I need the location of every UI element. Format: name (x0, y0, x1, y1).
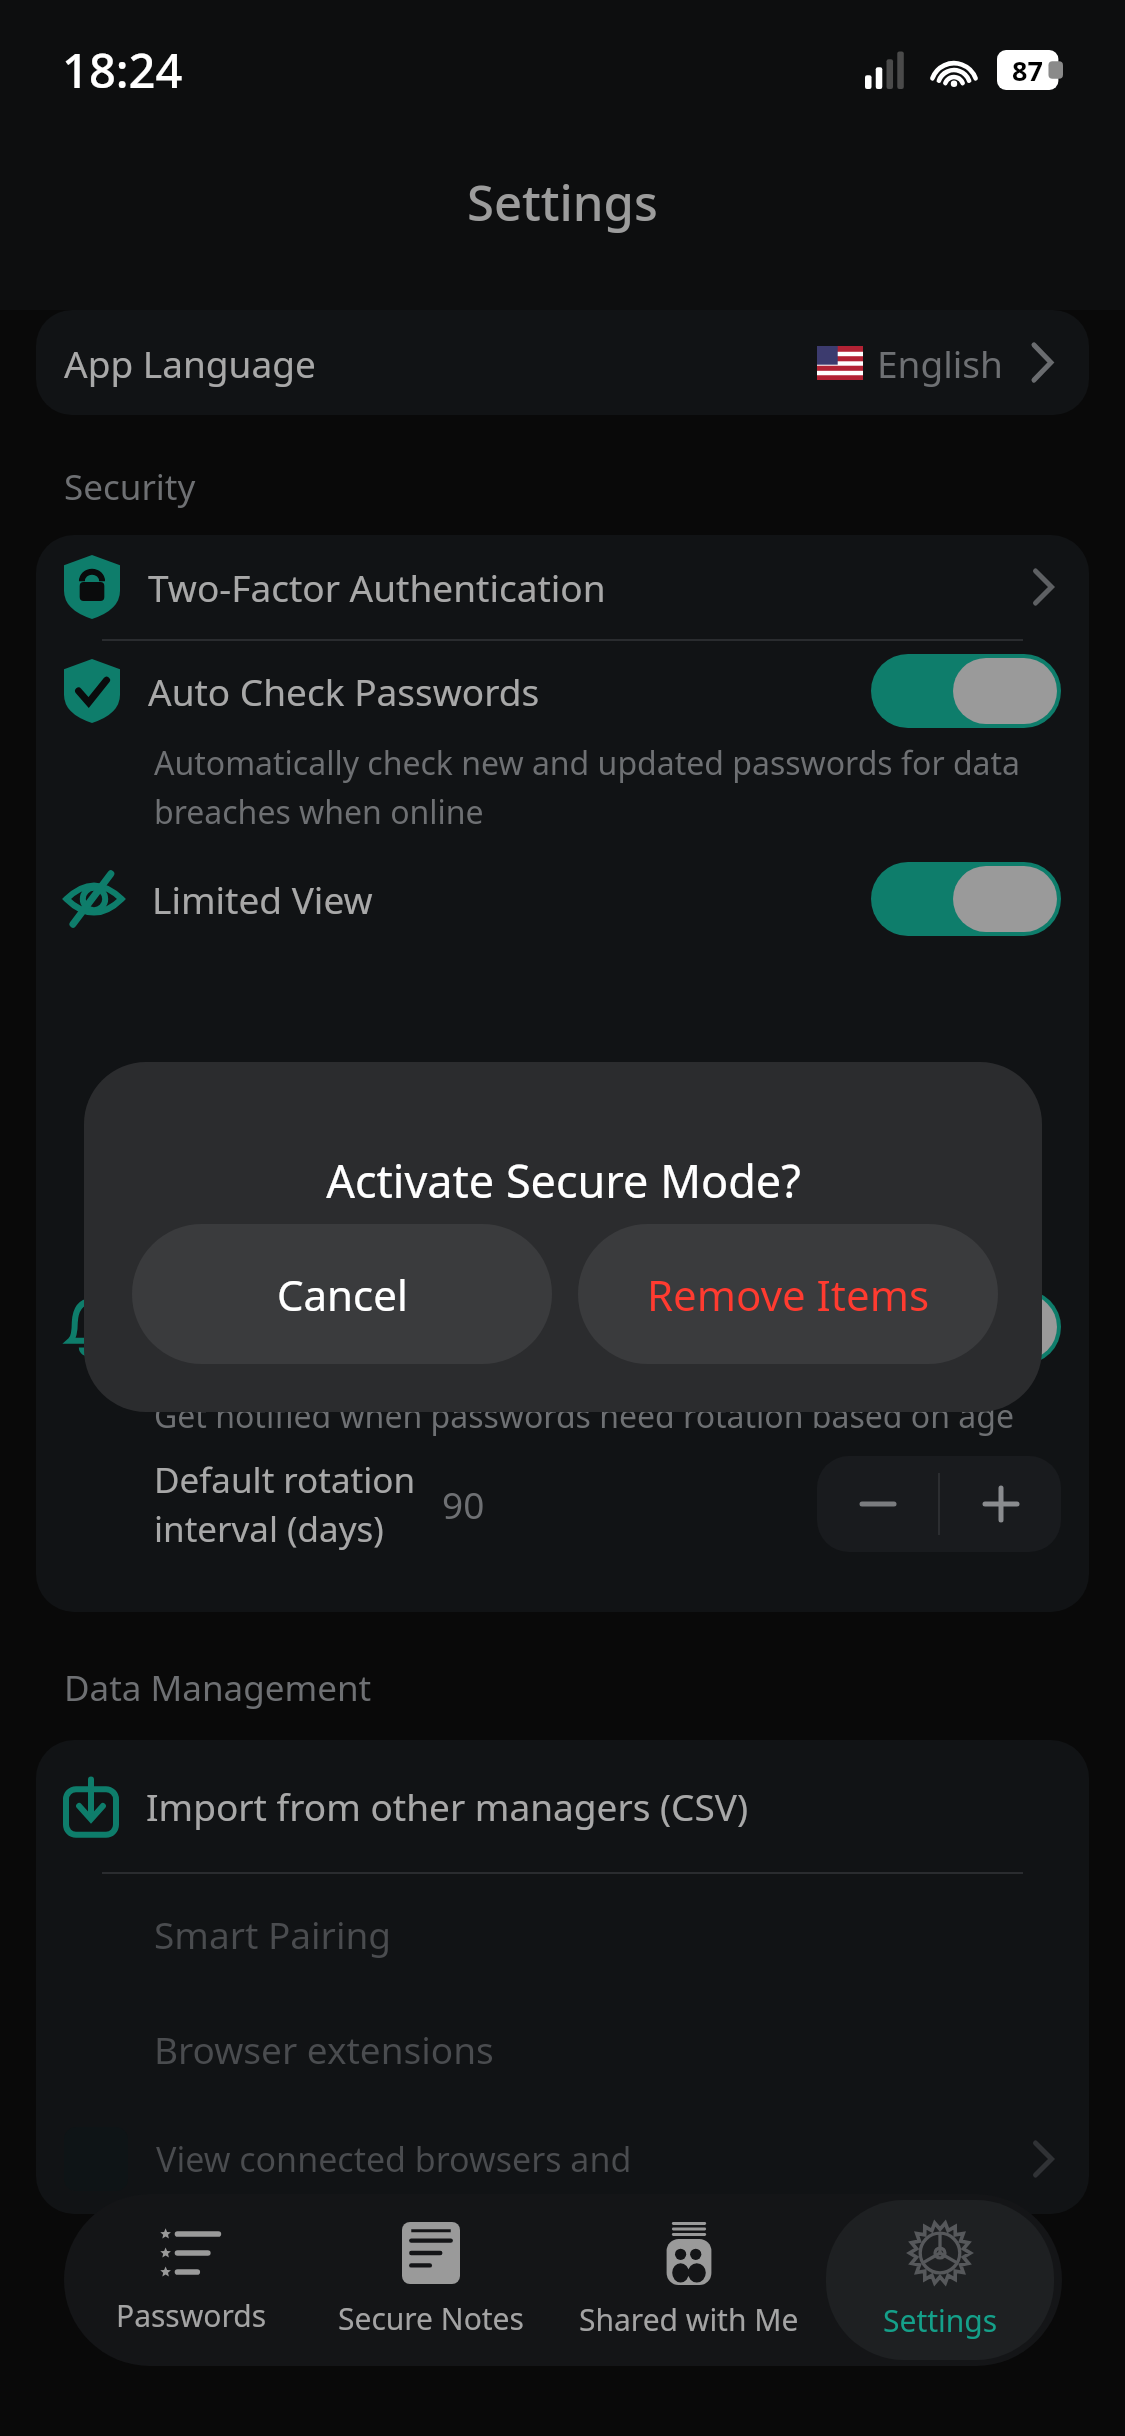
button[interactable]: Decrease (817, 1456, 938, 1552)
staticText: Cancel (277, 1266, 408, 1323)
staticText: Automatically check new and updated pass… (154, 741, 1061, 833)
staticText: Get notified when passwords need rotatio… (154, 1394, 1014, 1438)
button[interactable]: App Language (36, 310, 1089, 415)
staticText: Activate Secure Mode? (326, 1150, 801, 1211)
button[interactable]: Secure Notes (311, 2200, 551, 2360)
staticText: 90 (442, 1479, 485, 1529)
staticText: 18:24 (62, 38, 183, 102)
staticText: View connected browsers and (156, 2136, 632, 2182)
button[interactable]: Passwords (72, 2200, 311, 2360)
button[interactable]: Settings (826, 2200, 1054, 2360)
staticText: Default rotation interval (days) (154, 1456, 416, 1552)
button[interactable]: Toggle (871, 862, 1061, 936)
staticText: Smart Pairing (154, 1909, 392, 1959)
button[interactable]: Toggle (871, 1290, 1061, 1364)
button[interactable]: Increase (940, 1456, 1061, 1552)
button[interactable]: Two-Factor Authentication (36, 535, 1089, 639)
button[interactable]: Import from other managers (CSV) (36, 1740, 1089, 1872)
button[interactable]: Shared with Me (551, 2200, 826, 2360)
button[interactable]: Password Rotation Reminders (36, 1277, 1089, 1376)
staticText: Import from other managers (CSV) (146, 1781, 749, 1831)
staticText: App Language (64, 338, 316, 388)
staticText: Limited View (152, 874, 373, 924)
staticText: Remove Items (647, 1266, 930, 1323)
staticText: Two-Factor Authentication (148, 562, 606, 612)
button[interactable]: Remove Items (578, 1224, 998, 1364)
staticText: Data Management (64, 1664, 372, 1712)
staticText: Settings (883, 2300, 998, 2341)
button[interactable]: Smart Pairing (36, 1874, 1089, 1994)
button[interactable]: Cancel (132, 1224, 552, 1364)
staticText: Shared with Me (579, 2299, 799, 2340)
staticText: Settings (467, 169, 658, 236)
button[interactable]: Toggle (871, 654, 1061, 728)
button[interactable]: Auto Check Passwords (36, 641, 1089, 851)
staticText: Auto Check Passwords (148, 666, 540, 716)
staticText: Secure Notes (338, 2298, 524, 2339)
staticText: 87 (1012, 52, 1043, 89)
staticText: Password Rotation Reminders (146, 1277, 471, 1376)
staticText: Browser extensions (154, 2024, 494, 2074)
staticText: Passwords (116, 2295, 267, 2336)
button[interactable]: Limited View (36, 851, 1089, 947)
staticText: English (877, 338, 1003, 388)
staticText: Security (64, 463, 196, 511)
